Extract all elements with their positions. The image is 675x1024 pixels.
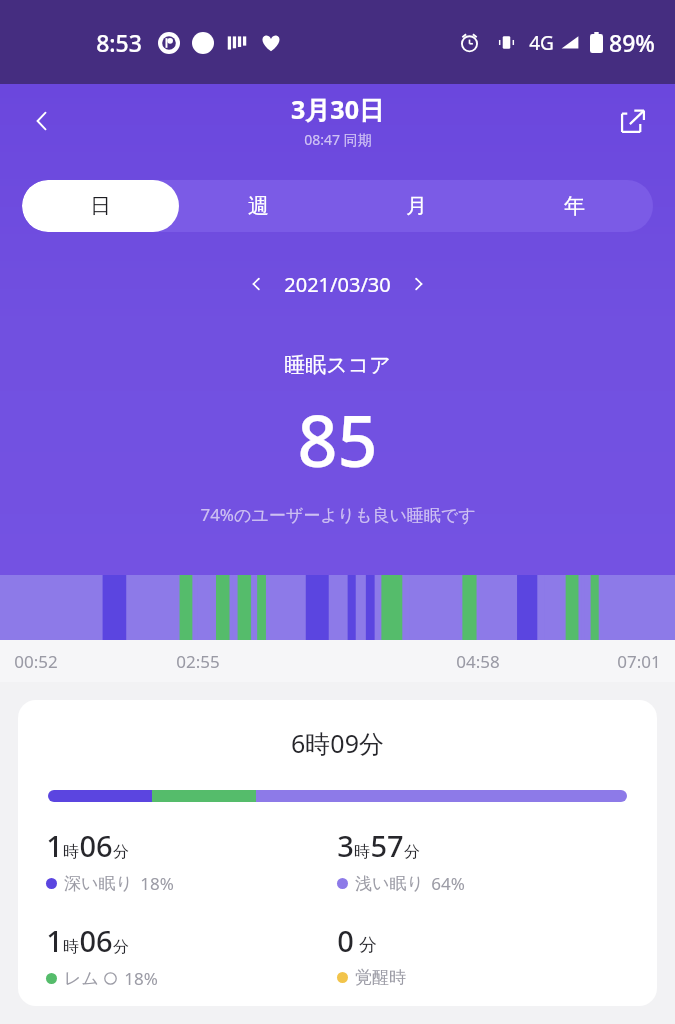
staticText: 89% [609,27,655,58]
staticText: 18% [124,967,158,990]
staticText: 1 [46,826,63,865]
staticText: 年 [564,193,585,219]
button[interactable]: 日 [22,180,179,232]
staticText: 4G [529,30,554,56]
button[interactable]: Previous day [236,264,276,304]
staticText: 分 [404,842,420,862]
staticText: 04:58 [456,650,500,673]
staticText: 64% [431,872,465,895]
staticText: 月 [406,193,427,219]
staticText: 18% [140,872,174,895]
staticText: 8:53 [96,27,142,58]
staticText: 3月30日 [291,92,384,126]
staticText: 覚醒時 [355,967,406,988]
button[interactable]: Next day [399,264,439,304]
staticText: 06 [79,921,113,960]
staticText: 深い眠り [64,873,133,894]
staticText: 85 [297,392,378,487]
staticText: 02:55 [176,650,220,673]
button[interactable]: Back [18,97,66,145]
staticText: 06 [79,826,113,865]
button[interactable]: 月 [337,180,495,232]
staticText: 週 [248,193,269,219]
button[interactable]: 年 [495,180,653,232]
staticText: 1 [46,921,63,960]
staticText: 浅い眠り [355,873,424,894]
staticText: 分 [113,842,129,862]
staticText: 日 [90,193,111,219]
button[interactable]: 週 [179,180,337,232]
staticText: 00:52 [14,650,58,673]
staticText: レム [64,968,99,989]
staticText: 睡眠スコア [284,352,391,378]
button[interactable]: Share [609,97,657,145]
staticText: 分 [113,937,129,957]
staticText: 時 [63,937,79,957]
staticText: 3 [337,826,354,865]
staticText: 2021/03/30 [284,271,391,298]
staticText: 6時09分 [291,726,384,760]
staticText: 07:01 [617,650,661,673]
staticText: 分 [359,934,377,957]
staticText: 57 [370,826,404,865]
staticText: 時 [63,842,79,862]
staticText: 74%のユーザーよりも良い睡眠です [200,503,476,526]
staticText: 0 [337,921,354,960]
staticText: 08:47 同期 [304,130,372,149]
staticText: 時 [354,842,370,862]
